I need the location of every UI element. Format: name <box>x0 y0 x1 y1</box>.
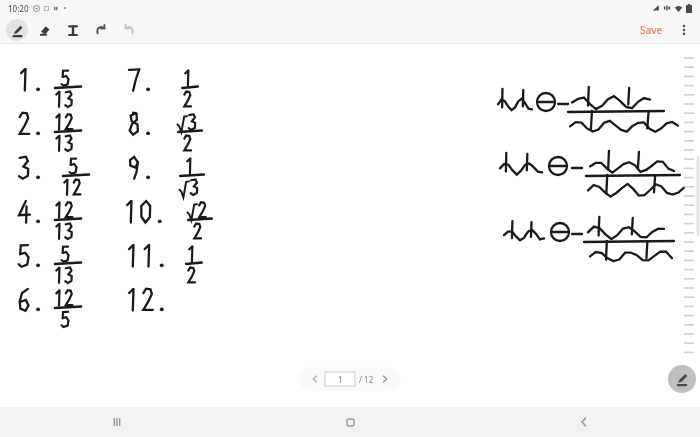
button[interactable]: Eraser <box>34 19 56 41</box>
button[interactable]: Next page <box>377 371 393 387</box>
button[interactable]: Previous page <box>307 371 323 387</box>
button[interactable]: 1 <box>325 372 355 386</box>
button[interactable]: Save <box>635 20 668 40</box>
staticText: 10:20 <box>8 3 29 14</box>
button[interactable]: Redo <box>118 19 140 41</box>
staticText: / 12 <box>359 374 374 385</box>
button[interactable]: Text <box>62 19 84 41</box>
button[interactable]: More options <box>674 20 694 40</box>
staticText: Save <box>640 23 663 37</box>
button[interactable]: Home <box>234 407 467 437</box>
button[interactable]: Undo <box>90 19 112 41</box>
staticText: 1 <box>338 374 343 385</box>
button[interactable]: Pen <box>6 19 28 41</box>
button[interactable]: Back <box>467 407 700 437</box>
button[interactable]: Pen tool <box>668 365 696 393</box>
button[interactable]: Recent apps <box>0 407 234 437</box>
